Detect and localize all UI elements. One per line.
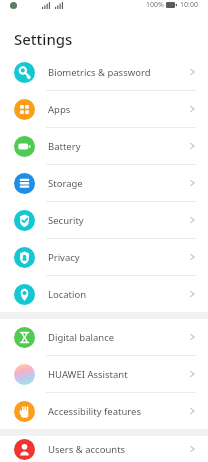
button[interactable]: Apps <box>0 91 208 127</box>
staticText: Accessibility features <box>48 405 188 418</box>
staticText: Settings <box>14 29 73 49</box>
staticText: Security <box>48 214 188 227</box>
button[interactable]: Battery <box>0 128 208 164</box>
button[interactable]: Location <box>0 276 208 312</box>
button[interactable]: Digital balance <box>0 319 208 355</box>
staticText: 10:00 <box>180 0 198 10</box>
button[interactable]: Storage <box>0 165 208 201</box>
button[interactable]: Privacy <box>0 239 208 275</box>
staticText: HUAWEI Assistant <box>48 368 188 381</box>
button[interactable]: Accessibility features <box>0 393 208 429</box>
button[interactable]: Users & accounts <box>0 436 208 462</box>
button[interactable]: Security <box>0 202 208 238</box>
staticText: Storage <box>48 177 188 190</box>
staticText: Apps <box>48 103 188 116</box>
staticText: Privacy <box>48 251 188 264</box>
staticText: Users & accounts <box>48 443 188 456</box>
button[interactable]: Biometrics & password <box>0 54 208 90</box>
staticText: 100% <box>146 0 164 10</box>
button[interactable]: HUAWEI Assistant <box>0 356 208 392</box>
staticText: Biometrics & password <box>48 66 188 79</box>
staticText: Battery <box>48 140 188 153</box>
staticText: Location <box>48 288 188 301</box>
staticText: Digital balance <box>48 331 188 344</box>
